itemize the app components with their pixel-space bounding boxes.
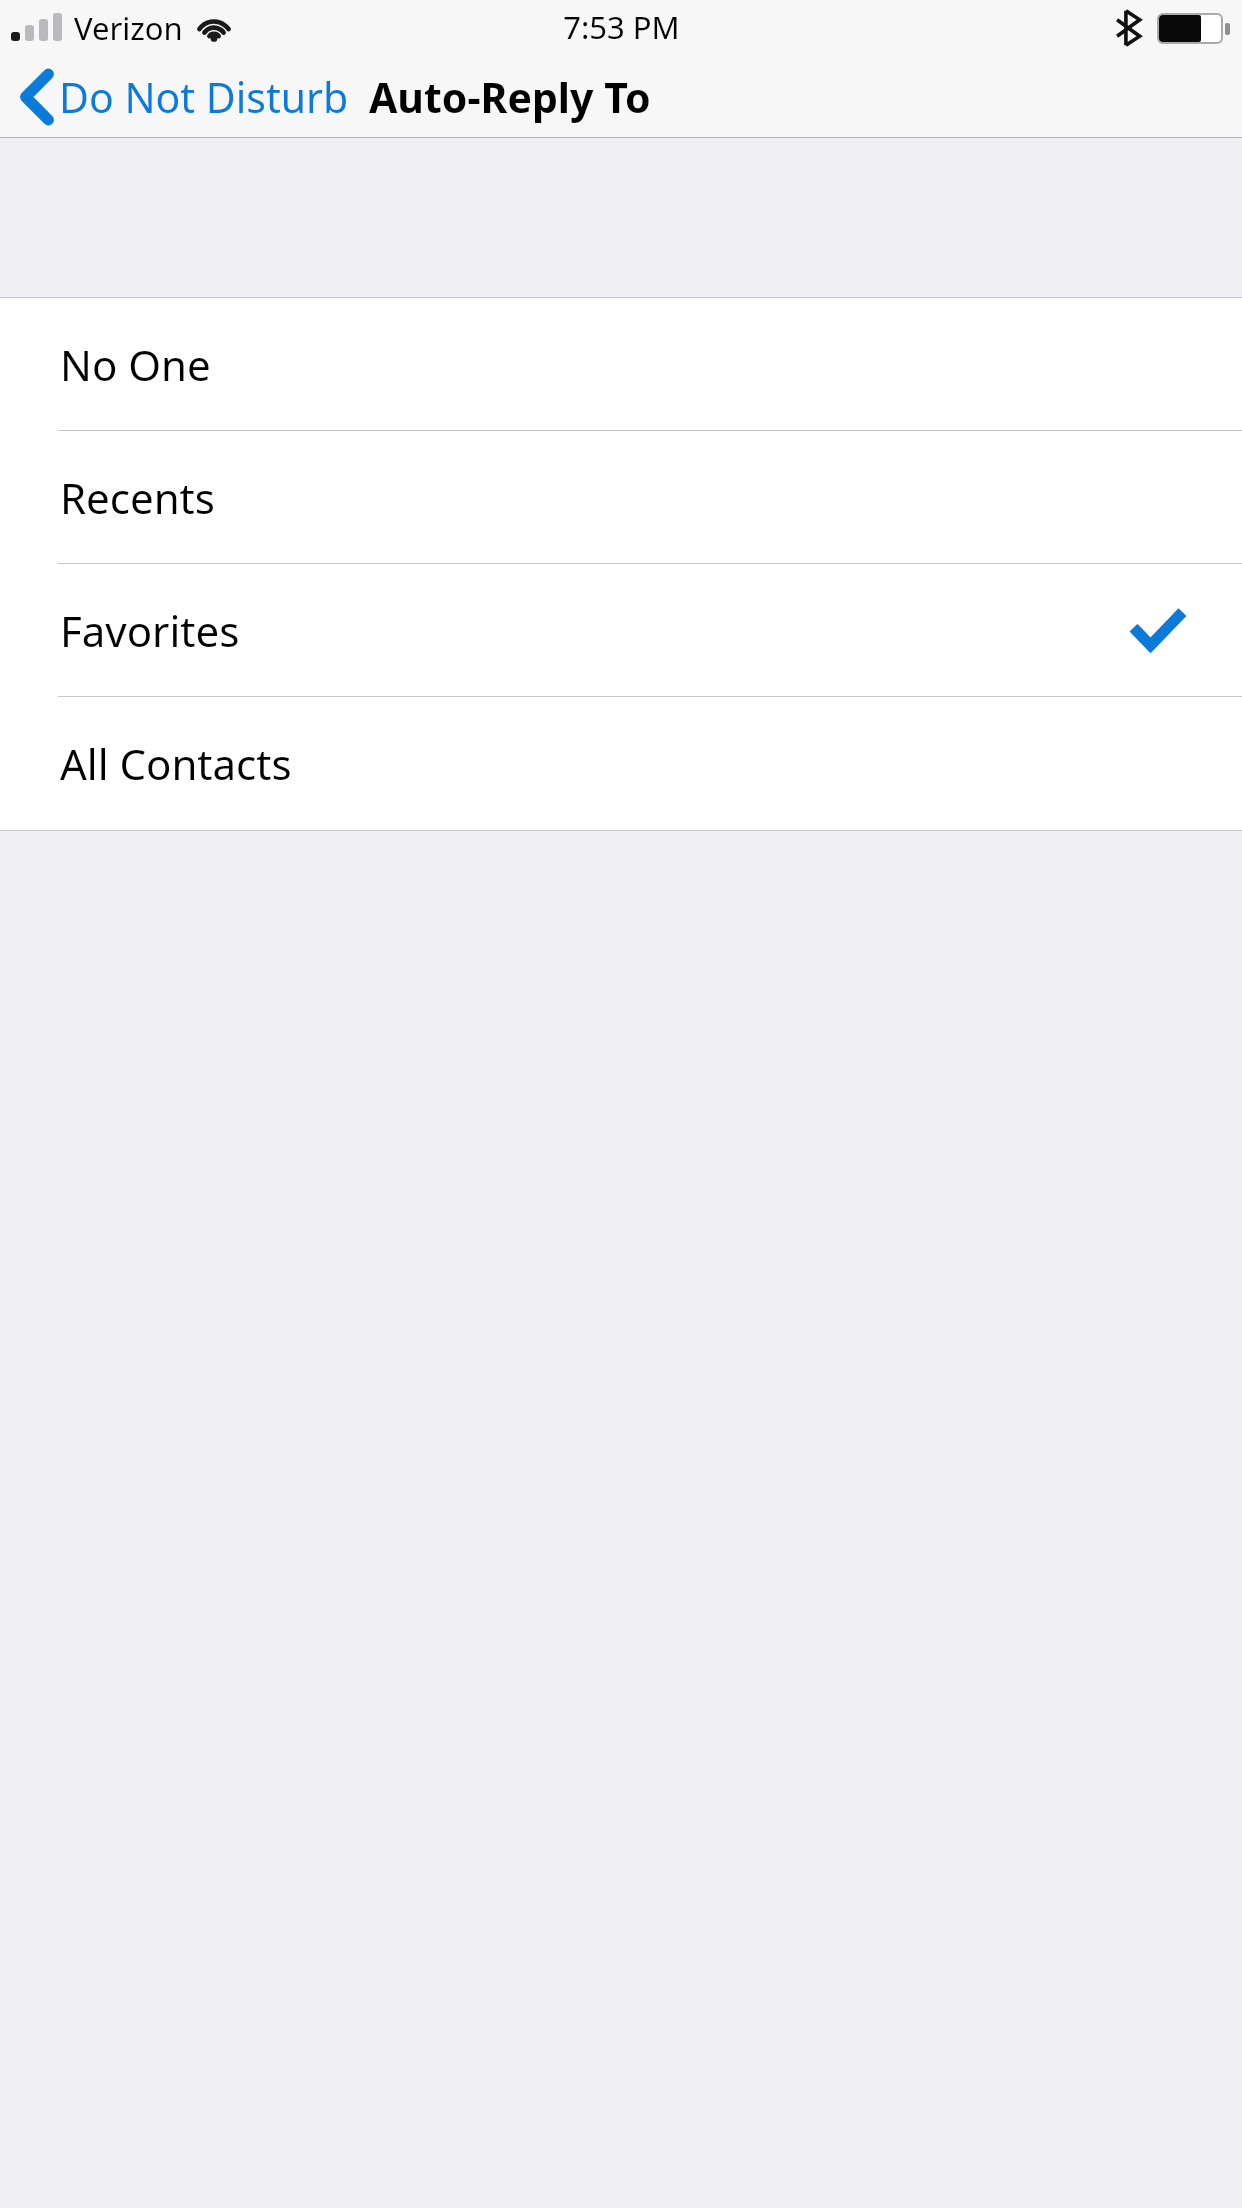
staticText: Do Not Disturb xyxy=(59,69,349,125)
staticText: Auto-Reply To xyxy=(369,69,651,125)
staticText: Recents xyxy=(60,469,215,526)
button[interactable]: Back xyxy=(0,61,357,133)
button[interactable]: No One xyxy=(0,298,1242,431)
staticText: No One xyxy=(60,336,211,393)
button[interactable]: All Contacts xyxy=(0,697,1242,830)
staticText: 7:53 PM xyxy=(563,6,680,48)
staticText: Verizon xyxy=(74,7,183,49)
other: Back xyxy=(22,71,52,123)
button[interactable]: Favorites xyxy=(0,564,1242,697)
staticText: All Contacts xyxy=(60,735,292,792)
button[interactable]: Recents xyxy=(0,431,1242,564)
staticText: Favorites xyxy=(60,602,240,659)
